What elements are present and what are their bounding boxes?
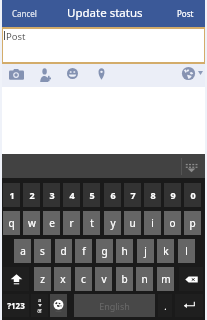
staticText: 7 <box>130 189 136 201</box>
staticText: z <box>40 272 45 286</box>
button[interactable]: Tag people <box>39 68 51 82</box>
button[interactable]: d <box>55 239 72 263</box>
staticText: a <box>38 296 42 304</box>
staticText: 3 <box>49 189 55 201</box>
button[interactable]: w <box>23 211 40 235</box>
staticText: 5 <box>89 189 95 201</box>
staticText: f <box>82 244 86 258</box>
button[interactable]: q <box>3 211 20 235</box>
staticText: English <box>99 300 130 312</box>
staticText: Update status <box>67 5 143 21</box>
button[interactable]: m <box>157 267 174 291</box>
staticText: Cancel <box>12 8 37 19</box>
button[interactable]: Add photo <box>9 69 24 80</box>
staticText: 0 <box>190 189 196 201</box>
staticText: s <box>40 244 45 258</box>
staticText: h <box>121 244 128 258</box>
staticText: a <box>20 244 26 258</box>
button[interactable]: Post <box>3 29 204 62</box>
staticText: Post <box>6 30 26 43</box>
button[interactable]: y <box>104 211 121 235</box>
button[interactable]: 6 <box>104 183 121 207</box>
button[interactable]: 7 <box>124 183 141 207</box>
button[interactable]: Enter <box>175 294 203 317</box>
staticText: x <box>60 272 66 286</box>
button[interactable]: g <box>96 239 113 263</box>
staticText: v <box>101 272 107 286</box>
button[interactable]: f <box>75 239 92 263</box>
staticText: अ <box>37 307 42 315</box>
staticText: r <box>69 216 74 230</box>
button[interactable]: 0 <box>184 183 201 207</box>
staticText: i <box>151 216 154 230</box>
button[interactable]: p <box>184 211 201 235</box>
button[interactable]: z <box>34 267 51 291</box>
staticText: j <box>144 244 147 258</box>
button[interactable]: u <box>124 211 141 235</box>
button[interactable]: 2 <box>23 183 40 207</box>
button[interactable]: k <box>157 239 174 263</box>
button[interactable]: e <box>43 211 60 235</box>
staticText: w <box>28 216 36 230</box>
staticText: d <box>60 244 67 258</box>
button[interactable]: ?123 <box>3 294 29 317</box>
button[interactable]: o <box>164 211 181 235</box>
staticText: . <box>164 300 167 312</box>
button[interactable]: i <box>144 211 161 235</box>
staticText: k <box>163 244 169 258</box>
staticText: Post <box>177 8 194 19</box>
staticText: n <box>141 272 148 286</box>
button[interactable]: v <box>95 267 112 291</box>
staticText: q <box>8 216 15 230</box>
button[interactable]: English <box>74 294 155 317</box>
button[interactable]: n <box>136 267 153 291</box>
button[interactable]: 9 <box>164 183 181 207</box>
staticText: l <box>185 244 188 258</box>
button[interactable]: 4 <box>63 183 80 207</box>
button[interactable]: s <box>34 239 51 263</box>
button[interactable]: 5 <box>83 183 100 207</box>
staticText: b <box>121 272 128 286</box>
staticText: 6 <box>110 189 116 201</box>
button[interactable]: . <box>158 294 172 317</box>
button[interactable]: a <box>14 239 31 263</box>
button[interactable]: j <box>137 239 154 263</box>
button[interactable]: x <box>54 267 71 291</box>
button[interactable]: Hide keyboard <box>185 160 198 173</box>
button[interactable]: Location <box>97 68 106 80</box>
button[interactable]: Backspace <box>179 267 203 291</box>
staticText: 1 <box>9 189 15 201</box>
button[interactable]: Switch language <box>31 294 48 317</box>
button[interactable]: b <box>116 267 133 291</box>
staticText: o <box>169 216 176 230</box>
staticText: c <box>81 272 86 286</box>
staticText: 8 <box>150 189 156 201</box>
button[interactable]: Change keyboard <box>50 294 67 317</box>
button[interactable]: Cancel <box>7 3 42 24</box>
button[interactable]: Change privacy <box>198 71 203 75</box>
button[interactable]: Privacy: Public <box>181 66 196 81</box>
staticText: ?123 <box>7 300 25 311</box>
button[interactable]: 8 <box>144 183 161 207</box>
staticText: 2 <box>29 189 35 201</box>
button[interactable]: Post <box>172 3 199 24</box>
staticText: e <box>49 216 55 230</box>
staticText: y <box>110 216 116 230</box>
staticText: p <box>189 216 196 230</box>
staticText: 9 <box>170 189 176 201</box>
button[interactable]: h <box>116 239 133 263</box>
staticText: u <box>129 216 136 230</box>
button[interactable]: l <box>178 239 195 263</box>
staticText: 4 <box>69 189 75 201</box>
staticText: m <box>161 272 171 286</box>
staticText: g <box>101 244 108 258</box>
button[interactable]: Shift <box>3 267 29 291</box>
button[interactable]: Feeling <box>67 68 78 79</box>
button[interactable]: 1 <box>3 183 20 207</box>
staticText: t <box>90 216 94 230</box>
button[interactable]: r <box>63 211 80 235</box>
button[interactable]: 3 <box>43 183 60 207</box>
button[interactable]: t <box>83 211 100 235</box>
button[interactable]: c <box>75 267 92 291</box>
